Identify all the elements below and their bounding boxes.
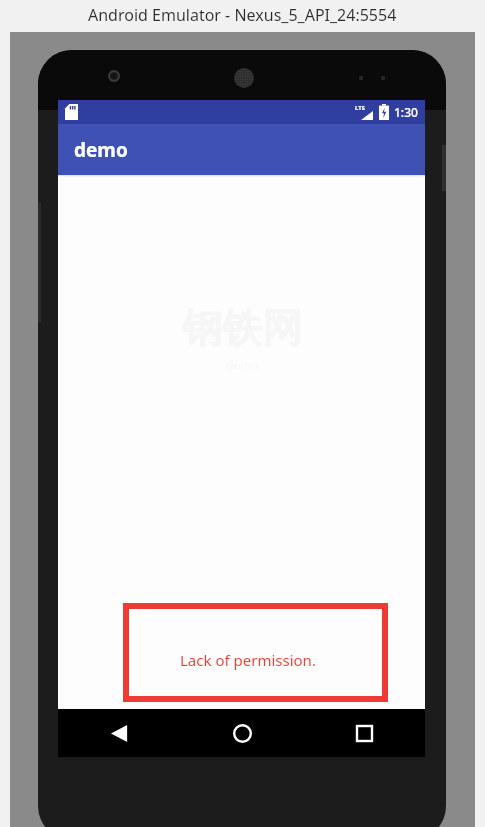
button[interactable]: Back (58, 709, 181, 757)
staticText: demo (74, 137, 128, 163)
button[interactable]: Recent apps (303, 709, 425, 757)
button[interactable]: Home (181, 709, 303, 757)
button[interactable]: Lack of permission. (129, 609, 382, 696)
staticText: Lack of permission. (180, 650, 316, 670)
staticText: LTE (355, 104, 366, 112)
staticText: 钢铁网 (182, 303, 302, 353)
staticText: 1:30 (394, 104, 418, 120)
button[interactable]: demo (58, 124, 425, 175)
staticText: Android Emulator - Nexus_5_API_24:5554 (88, 4, 397, 26)
